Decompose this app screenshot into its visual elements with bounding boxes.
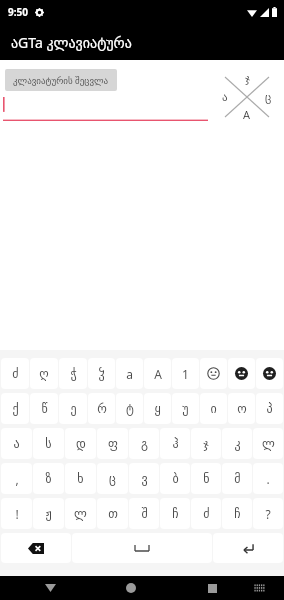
button[interactable]: ე [59,393,87,424]
staticText: ღ [39,367,49,381]
button[interactable]: ა [1,428,32,459]
button[interactable]: Recents [197,576,227,600]
staticText: ფ [108,437,118,451]
button[interactable]: ტ [116,393,143,424]
button[interactable]: ვ [129,463,159,494]
button[interactable]: ი [200,393,227,424]
button[interactable]: ყ [144,393,171,424]
staticText: ვ [141,472,148,486]
staticText: ქ [12,402,19,416]
button[interactable]: კ [222,428,252,459]
button[interactable]: ჴ [88,358,115,389]
button[interactable]: უ [172,393,199,424]
button[interactable]: ჟ [33,498,64,529]
staticText: ჩ [172,507,179,521]
staticText: ბ [172,472,179,486]
staticText: ტ [126,402,134,416]
button[interactable]: თ [97,498,128,529]
staticText: ა [13,437,20,451]
staticText: ი [210,402,217,416]
staticText: ც [265,91,272,104]
staticText: ჩ [234,507,241,521]
button[interactable]: Emoji [256,358,283,389]
staticText: პ [266,402,273,416]
staticText: ყ [154,402,161,416]
staticText: ზ [45,472,52,486]
staticText: ო [237,402,247,416]
button[interactable]: ფ [97,428,128,459]
button[interactable]: Switch keyboard [247,576,271,600]
button[interactable]: ღ [30,358,58,389]
button[interactable]: a [116,358,143,389]
button[interactable]: წ [30,393,58,424]
button[interactable]: გ [129,428,159,459]
button[interactable]: Enter [213,533,283,563]
button[interactable]: დ [65,428,96,459]
button[interactable]: A [144,358,171,389]
staticText: ძ [12,367,19,381]
staticText: ლ [74,507,87,521]
staticText: 9:50 [8,5,28,19]
button[interactable]: ჰ [160,428,190,459]
staticText: წ [41,402,48,416]
button[interactable]: კლავიატურის შეცვლა [5,69,117,91]
button[interactable]: ლ [65,498,96,529]
button[interactable]: Backspace [1,533,71,563]
button[interactable]: ც [97,463,128,494]
staticText: ე [70,402,77,416]
staticText: ! [15,506,19,522]
staticText: ? [265,506,271,522]
staticText: ჭ [70,367,77,381]
button[interactable]: Space [72,533,212,563]
button[interactable]: Home [116,576,146,600]
button[interactable]: , [1,463,32,494]
button[interactable]: ნ [191,463,221,494]
button[interactable]: ძ [1,358,29,389]
staticText: კ [234,437,241,451]
button[interactable] [200,358,227,389]
button[interactable]: პ [256,393,283,424]
button[interactable]: ბ [160,463,190,494]
button[interactable]: რ [88,393,115,424]
button[interactable]: ! [1,498,32,529]
button[interactable]: ჩ [160,498,190,529]
button[interactable]: 1 [172,358,199,389]
staticText: მ [234,472,241,486]
button[interactable]: ? [253,498,283,529]
staticText: ც [109,472,116,486]
staticText: უ [182,402,189,416]
button[interactable]: . [253,463,283,494]
button[interactable]: ს [33,428,64,459]
button[interactable]: მ [222,463,252,494]
staticText: a [126,366,133,382]
staticText: შ [141,507,148,521]
button[interactable]: Emoji [228,358,255,389]
button[interactable]: შ [129,498,159,529]
staticText: A [154,366,162,382]
button[interactable]: ო [228,393,255,424]
button[interactable]: ჩ [222,498,252,529]
button[interactable]: ქ [1,393,29,424]
button[interactable]: ჭ [59,358,87,389]
staticText: ლ [262,437,275,451]
staticText: ჯ [245,72,250,85]
staticText: ჰ [172,437,179,451]
button[interactable]: ხ [65,463,96,494]
staticText: ა [222,91,228,104]
button[interactable]: Back [35,576,65,600]
staticText: , [15,471,19,487]
button[interactable]: ძ [191,498,221,529]
button[interactable]: ზ [33,463,64,494]
staticText: გ [141,437,148,451]
staticText: აGTa კლავიატურა [11,33,132,52]
staticText: ნ [203,472,210,486]
staticText: ჴ [98,367,105,381]
button[interactable] [3,97,208,121]
staticText: კლავიატურის შეცვლა [13,74,109,86]
staticText: ჟ [45,507,52,521]
staticText: თ [108,507,118,521]
staticText: . [266,471,270,487]
staticText: 1 [182,366,189,382]
button[interactable]: ჯ [191,428,221,459]
button[interactable]: ლ [253,428,283,459]
